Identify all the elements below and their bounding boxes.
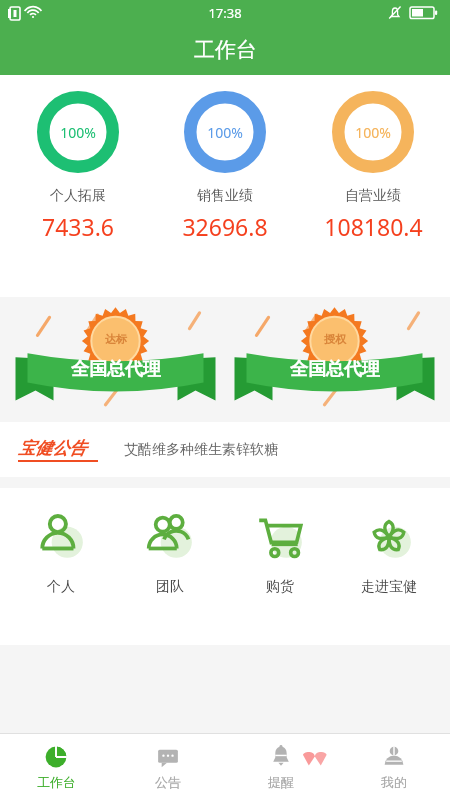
staticText: 宝健公告 xyxy=(18,438,86,459)
staticText: 100% xyxy=(207,123,243,142)
button[interactable]: 100% xyxy=(8,91,148,242)
button[interactable]: 走进宝健 xyxy=(340,510,438,596)
button[interactable]: 个人 xyxy=(12,510,110,596)
staticText: 全国总代理 xyxy=(71,358,161,381)
staticText: 购货 xyxy=(266,578,294,596)
button[interactable]: 我的 xyxy=(337,734,450,800)
button[interactable]: 宝健公告 xyxy=(0,422,450,477)
staticText: 32696.8 xyxy=(182,211,268,242)
button[interactable]: 达标 xyxy=(13,304,218,416)
staticText: 团队 xyxy=(156,578,184,596)
staticText: 全国总代理 xyxy=(290,358,380,381)
staticText: 授权 xyxy=(324,332,346,346)
staticText: 自营业绩 xyxy=(345,187,401,205)
staticText: 个人拓展 xyxy=(50,187,106,205)
button[interactable]: 100% xyxy=(155,91,295,242)
staticText: 达标 xyxy=(105,332,127,346)
staticText: 100% xyxy=(60,123,96,142)
staticText: 公告 xyxy=(155,774,181,790)
staticText: 提醒 xyxy=(268,774,294,790)
staticText: 我的 xyxy=(381,774,407,790)
button[interactable]: 购货 xyxy=(231,510,329,596)
staticText: 108180.4 xyxy=(324,211,423,242)
button[interactable]: 公告 xyxy=(112,734,224,800)
staticText: 17:38 xyxy=(208,4,242,22)
staticText: 艾酷维多种维生素锌软糖 xyxy=(124,441,278,459)
staticText: 走进宝健 xyxy=(361,578,417,596)
button[interactable]: 团队 xyxy=(121,510,219,596)
staticText: 7433.6 xyxy=(42,211,114,242)
button[interactable]: 100% xyxy=(303,91,443,242)
staticText: 个人 xyxy=(47,578,75,596)
staticText: 100% xyxy=(355,123,391,142)
button[interactable]: 授权 xyxy=(232,304,437,416)
staticText: 工作台 xyxy=(37,774,76,790)
button[interactable]: 工作台 xyxy=(0,734,112,800)
staticText: 销售业绩 xyxy=(197,187,253,205)
button[interactable]: 提醒 xyxy=(224,734,337,800)
staticText: 工作台 xyxy=(194,37,257,63)
